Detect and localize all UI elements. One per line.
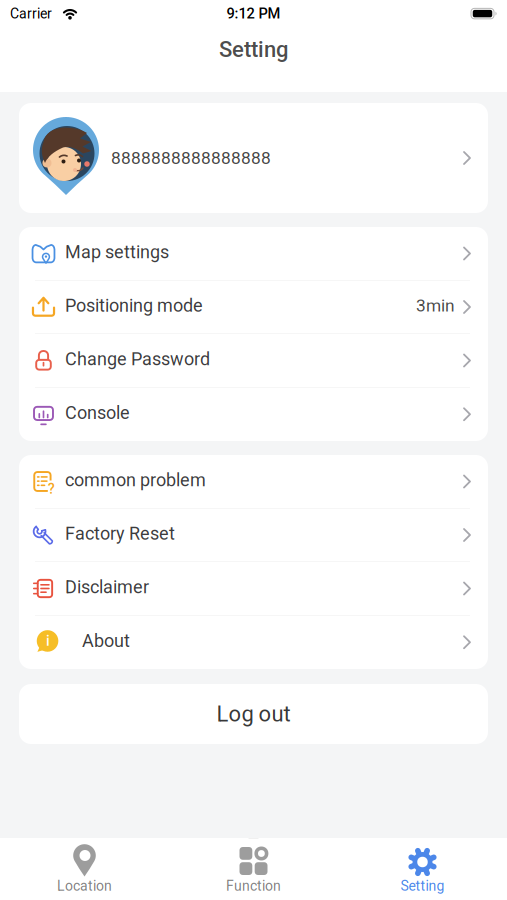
staticText: ? xyxy=(47,481,53,495)
button[interactable]: Change Password xyxy=(19,334,488,387)
staticText: Setting xyxy=(400,878,444,894)
staticText: Change Password xyxy=(65,348,210,370)
staticText: 9:12 PM xyxy=(226,5,280,22)
staticText: 3min xyxy=(416,295,455,316)
staticText: common problem xyxy=(65,469,206,491)
button[interactable]: i xyxy=(19,615,488,669)
button[interactable]: 8888888888888888 xyxy=(19,103,488,213)
staticText: Console xyxy=(65,402,130,423)
button[interactable]: Map settings xyxy=(19,227,488,280)
button[interactable]: Setting xyxy=(338,838,507,900)
staticText: Log out xyxy=(216,701,290,727)
button[interactable]: Disclaimer xyxy=(19,562,488,615)
button[interactable]: Location xyxy=(0,838,169,900)
staticText: 8888888888888888 xyxy=(111,148,271,168)
staticText: Function xyxy=(226,878,281,894)
staticText: About xyxy=(82,630,130,651)
button[interactable]: Log out xyxy=(19,684,488,744)
staticText: Disclaimer xyxy=(65,576,149,598)
staticText: Positioning mode xyxy=(65,295,203,316)
staticText: Map settings xyxy=(65,241,169,263)
staticText: Carrier xyxy=(10,5,52,22)
staticText: Setting xyxy=(219,37,288,62)
staticText: i xyxy=(46,633,49,649)
staticText: Factory Reset xyxy=(65,523,175,544)
button[interactable]: Positioning mode xyxy=(19,280,488,334)
button[interactable]: Function xyxy=(169,838,338,900)
button[interactable]: Factory Reset xyxy=(19,508,488,562)
staticText: Location xyxy=(57,878,112,894)
button[interactable]: Console xyxy=(19,387,488,441)
button[interactable]: ? xyxy=(19,455,488,508)
